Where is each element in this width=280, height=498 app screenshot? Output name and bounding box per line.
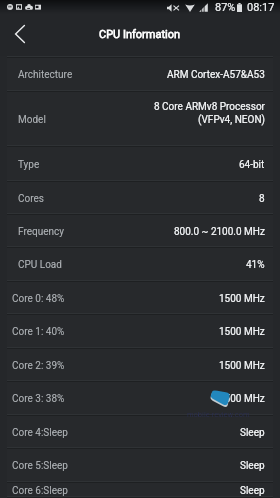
button[interactable]: Core 6:Sleep (7, 483, 273, 498)
staticText: 41% (246, 259, 265, 271)
staticText: 08:17 (247, 1, 275, 14)
button[interactable]: CPU Load (7, 248, 273, 282)
button[interactable]: Model (7, 92, 273, 147)
staticText: 1500 MHz (219, 293, 265, 305)
staticText: Core 4:Sleep (12, 427, 68, 439)
staticText: 1500 MHz (219, 393, 265, 405)
staticText: Sleep (240, 460, 265, 472)
staticText: mobile-review.com (187, 410, 250, 419)
button[interactable]: Type (7, 147, 273, 182)
staticText: 8 Core ARMv8 Processor (153, 101, 265, 113)
button[interactable]: Core 2: 39% (7, 349, 273, 382)
staticText: Sleep (240, 485, 265, 497)
button[interactable]: Architecture (7, 58, 273, 92)
staticText: Core 0: 48% (12, 293, 65, 305)
staticText: Core 5:Sleep (12, 460, 68, 472)
button[interactable]: Core 0: 48% (7, 282, 273, 315)
staticText: Frequency (18, 226, 64, 238)
button[interactable]: Frequency (7, 215, 273, 248)
button[interactable]: Core 1: 40% (7, 315, 273, 349)
staticText: Model (18, 114, 46, 126)
button[interactable]: Core 5:Sleep (7, 449, 273, 483)
staticText: Core 2: 39% (12, 360, 65, 372)
button[interactable]: Cores (7, 182, 273, 215)
staticText: Sleep (240, 427, 265, 439)
staticText: 87% (215, 1, 236, 14)
staticText: ARM Cortex-A57&A53 (167, 69, 265, 81)
staticText: 1500 MHz (219, 326, 265, 338)
button[interactable]: Core 3: 38% (7, 382, 273, 416)
button[interactable]: Core 4:Sleep (7, 416, 273, 449)
staticText: Architecture (18, 69, 73, 81)
staticText: Core 3: 38% (12, 393, 65, 405)
button[interactable]: Back (0, 15, 40, 55)
staticText: (VFPv4, NEON) (197, 114, 265, 126)
staticText: 800.0 ~ 2100.0 MHz (174, 226, 265, 238)
staticText: 8 (259, 193, 265, 205)
staticText: Core 1: 40% (12, 326, 65, 338)
staticText: 1500 MHz (219, 360, 265, 372)
staticText: Core 6:Sleep (12, 485, 68, 497)
staticText: Type (18, 159, 40, 171)
staticText: CPU Information (99, 28, 181, 41)
staticText: CPU Load (18, 259, 62, 271)
staticText: 64-bit (239, 159, 265, 171)
staticText: Cores (18, 193, 44, 205)
